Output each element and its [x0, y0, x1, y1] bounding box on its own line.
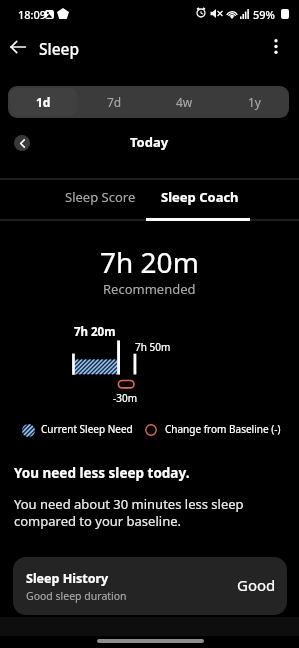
staticText: Sleep History [26, 570, 109, 587]
staticText: Sleep [39, 38, 80, 59]
staticText: 1d [36, 94, 51, 110]
staticText: Sleep Score [65, 188, 136, 206]
button[interactable]: 1d [10, 88, 77, 116]
staticText: 18:09 [18, 7, 47, 22]
button[interactable]: 7d [81, 88, 147, 116]
button[interactable]: Sleep Score [51, 179, 150, 219]
staticText: Sleep Coach [161, 188, 239, 206]
button[interactable]: More options [259, 30, 292, 63]
staticText: Change from Baseline (-) [165, 422, 281, 436]
staticText: 7d [107, 94, 122, 110]
staticText: 7h 20m [74, 324, 116, 340]
button[interactable]: Sleep Coach [150, 179, 249, 219]
staticText: 59% [253, 7, 275, 22]
staticText: 7h 20m [100, 243, 199, 281]
staticText: Current Sleep Need [41, 422, 133, 436]
staticText: Good sleep duration [26, 589, 127, 603]
staticText: Good [237, 575, 276, 595]
staticText: Recommended [103, 280, 196, 298]
staticText: You need less sleep today. [14, 464, 190, 482]
staticText: 4w [176, 94, 193, 110]
staticText: 7h 50m [135, 340, 171, 354]
staticText: 1y [248, 94, 261, 110]
button[interactable]: 1y [221, 88, 287, 116]
staticText: -30m [113, 391, 138, 405]
staticText: Today [130, 133, 169, 151]
button[interactable]: Back [1, 30, 34, 63]
button[interactable]: Sleep History [13, 557, 287, 615]
button[interactable]: Previous day [14, 135, 30, 151]
button[interactable]: 4w [151, 88, 217, 116]
staticText: You need about 30 minutes less sleep com… [14, 495, 244, 530]
